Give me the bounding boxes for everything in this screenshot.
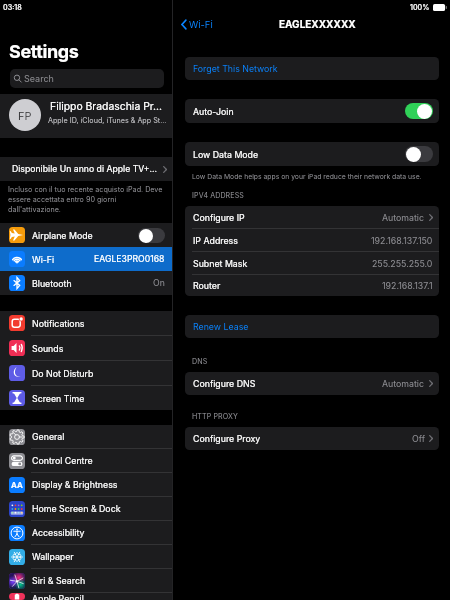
- button[interactable]: Airplane Mode: [0, 223, 172, 247]
- staticText: Wallpaper: [32, 551, 172, 562]
- button[interactable]: Accessibility: [0, 521, 172, 544]
- staticText: IPV4 ADDRESS: [192, 191, 244, 200]
- staticText: Filippo Bradaschia Pr...: [50, 100, 163, 113]
- button[interactable]: Control Centre: [0, 449, 172, 472]
- staticText: Apple ID, iCloud, iTunes & App St...: [48, 116, 167, 125]
- button[interactable]: Do Not Disturb: [0, 361, 172, 385]
- staticText: Automatic: [382, 212, 425, 223]
- button[interactable]: AA: [0, 473, 172, 496]
- button[interactable]: Auto-Join: [185, 99, 439, 123]
- button[interactable]: Off: [138, 228, 165, 243]
- staticText: IP Address: [193, 235, 371, 246]
- staticText: EAGLE3PRO0168: [94, 254, 165, 265]
- staticText: Settings: [9, 41, 79, 63]
- staticText: AA: [11, 480, 23, 490]
- staticText: Sounds: [32, 343, 172, 354]
- staticText: Wi-Fi: [189, 19, 213, 30]
- staticText: Forget This Network: [193, 63, 278, 74]
- button[interactable]: Router: [185, 275, 439, 296]
- staticText: On: [153, 278, 165, 289]
- staticText: Do Not Disturb: [32, 368, 172, 379]
- staticText: Search: [24, 73, 54, 84]
- staticText: Router: [193, 280, 382, 291]
- button[interactable]: Disponibile Un anno di Apple TV+...: [0, 157, 172, 181]
- button[interactable]: Screen Time: [0, 386, 172, 410]
- button[interactable]: On: [405, 103, 433, 119]
- staticText: Home Screen & Dock: [32, 503, 172, 514]
- button[interactable]: Siri & Search: [0, 569, 172, 592]
- button[interactable]: Wallpaper: [0, 545, 172, 568]
- staticText: Notifications: [32, 318, 172, 329]
- staticText: Display & Brightness: [32, 479, 172, 490]
- staticText: DNS: [192, 357, 208, 366]
- button[interactable]: Low Data Mode: [185, 142, 439, 166]
- button[interactable]: Subnet Mask: [185, 252, 439, 274]
- button[interactable]: Back to Wi-Fi: [181, 19, 213, 30]
- staticText: 192.168.137.1: [382, 280, 433, 291]
- button[interactable]: Configure DNS: [185, 372, 439, 395]
- button[interactable]: Apple Pencil: [0, 593, 172, 600]
- staticText: Bluetooth: [32, 278, 153, 289]
- staticText: General: [32, 431, 172, 442]
- button[interactable]: Forget This Network: [185, 57, 439, 80]
- staticText: Off: [412, 433, 425, 444]
- staticText: 192.168.137.150: [371, 235, 433, 246]
- button[interactable]: Sounds: [0, 336, 172, 360]
- staticText: Configure IP: [193, 212, 382, 223]
- staticText: Apple Pencil: [32, 593, 172, 600]
- button[interactable]: Notifications: [0, 311, 172, 335]
- staticText: Renew Lease: [193, 321, 249, 332]
- staticText: Configure Proxy: [193, 433, 412, 444]
- button[interactable]: Wi-Fi: [0, 247, 172, 271]
- button[interactable]: Off: [405, 146, 433, 162]
- button[interactable]: Search: [10, 69, 164, 88]
- button[interactable]: General: [0, 425, 172, 448]
- button[interactable]: Renew Lease: [185, 315, 439, 338]
- staticText: FP: [18, 109, 32, 122]
- staticText: Wi-Fi: [32, 254, 94, 265]
- staticText: Airplane Mode: [32, 230, 138, 241]
- staticText: EAGLEXXXXXX: [279, 18, 356, 30]
- staticText: Auto-Join: [193, 106, 405, 117]
- button[interactable]: IP Address: [185, 229, 439, 251]
- staticText: Automatic: [382, 378, 425, 389]
- staticText: Low Data Mode: [193, 149, 405, 160]
- staticText: 03:18: [3, 3, 22, 12]
- staticText: Disponibile Un anno di Apple TV+...: [12, 164, 163, 175]
- staticText: Siri & Search: [32, 575, 172, 586]
- button[interactable]: Bluetooth: [0, 271, 172, 295]
- staticText: Subnet Mask: [193, 258, 372, 269]
- button[interactable]: Configure Proxy: [185, 427, 439, 450]
- staticText: HTTP PROXY: [192, 412, 238, 421]
- button[interactable]: FP: [0, 94, 172, 138]
- staticText: Control Centre: [32, 455, 172, 466]
- staticText: Accessibility: [32, 527, 172, 538]
- staticText: Configure DNS: [193, 378, 382, 389]
- staticText: Incluso con il tuo recente acquisto iPad…: [8, 185, 164, 213]
- staticText: Screen Time: [32, 393, 172, 404]
- staticText: 255.255.255.0: [372, 258, 433, 269]
- staticText: 100%: [410, 3, 430, 12]
- staticText: Low Data Mode helps apps on your iPad re…: [192, 172, 422, 180]
- button[interactable]: Configure IP: [185, 206, 439, 228]
- button[interactable]: Home Screen & Dock: [0, 497, 172, 520]
